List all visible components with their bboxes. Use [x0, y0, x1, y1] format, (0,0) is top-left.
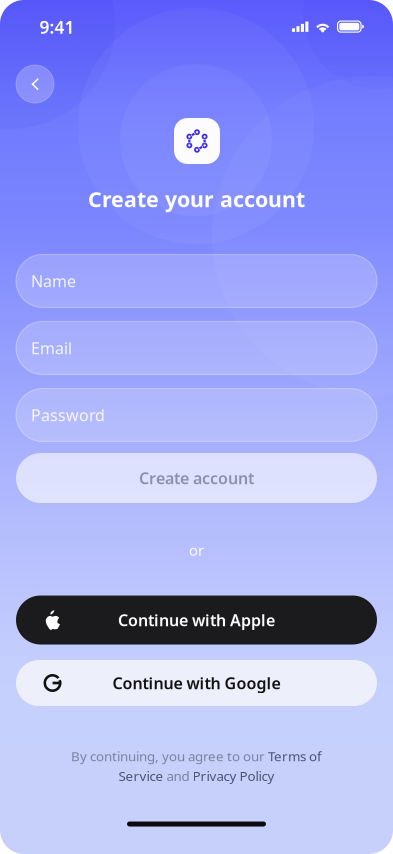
button[interactable]: Continue with Apple — [16, 595, 377, 644]
button[interactable]: Create account — [16, 453, 377, 503]
staticText: or — [189, 540, 204, 560]
staticText: 9:41 — [39, 15, 74, 38]
staticText: Email — [31, 337, 72, 359]
staticText: Create account — [139, 467, 254, 489]
staticText: Terms of — [268, 747, 322, 765]
staticText: Password — [31, 404, 105, 426]
staticText: Continue with Google — [112, 672, 280, 694]
staticText: and — [163, 767, 192, 785]
button[interactable]: Back — [16, 65, 54, 103]
staticText: Name — [31, 270, 76, 292]
staticText: Service — [118, 767, 163, 785]
staticText: Create your account — [88, 185, 305, 213]
staticText: Privacy Policy — [192, 767, 274, 785]
staticText: Continue with Apple — [118, 609, 275, 631]
button[interactable]: Privacy Policy — [192, 767, 274, 785]
button[interactable]: Continue with Google — [16, 660, 377, 706]
button[interactable]: Service — [118, 767, 163, 785]
button[interactable]: Terms of — [268, 747, 322, 765]
staticText: By continuing, you agree to our — [71, 747, 268, 765]
